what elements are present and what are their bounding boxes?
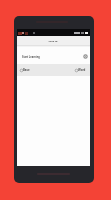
staticText: Base	[23, 68, 30, 72]
staticText: Snap ID	[48, 39, 58, 42]
button[interactable]: Start Learning	[17, 50, 90, 63]
staticText: Start Learning	[22, 55, 40, 58]
other: Settings	[83, 54, 88, 59]
button[interactable]: Base	[17, 64, 90, 76]
staticText: Word	[78, 68, 86, 72]
